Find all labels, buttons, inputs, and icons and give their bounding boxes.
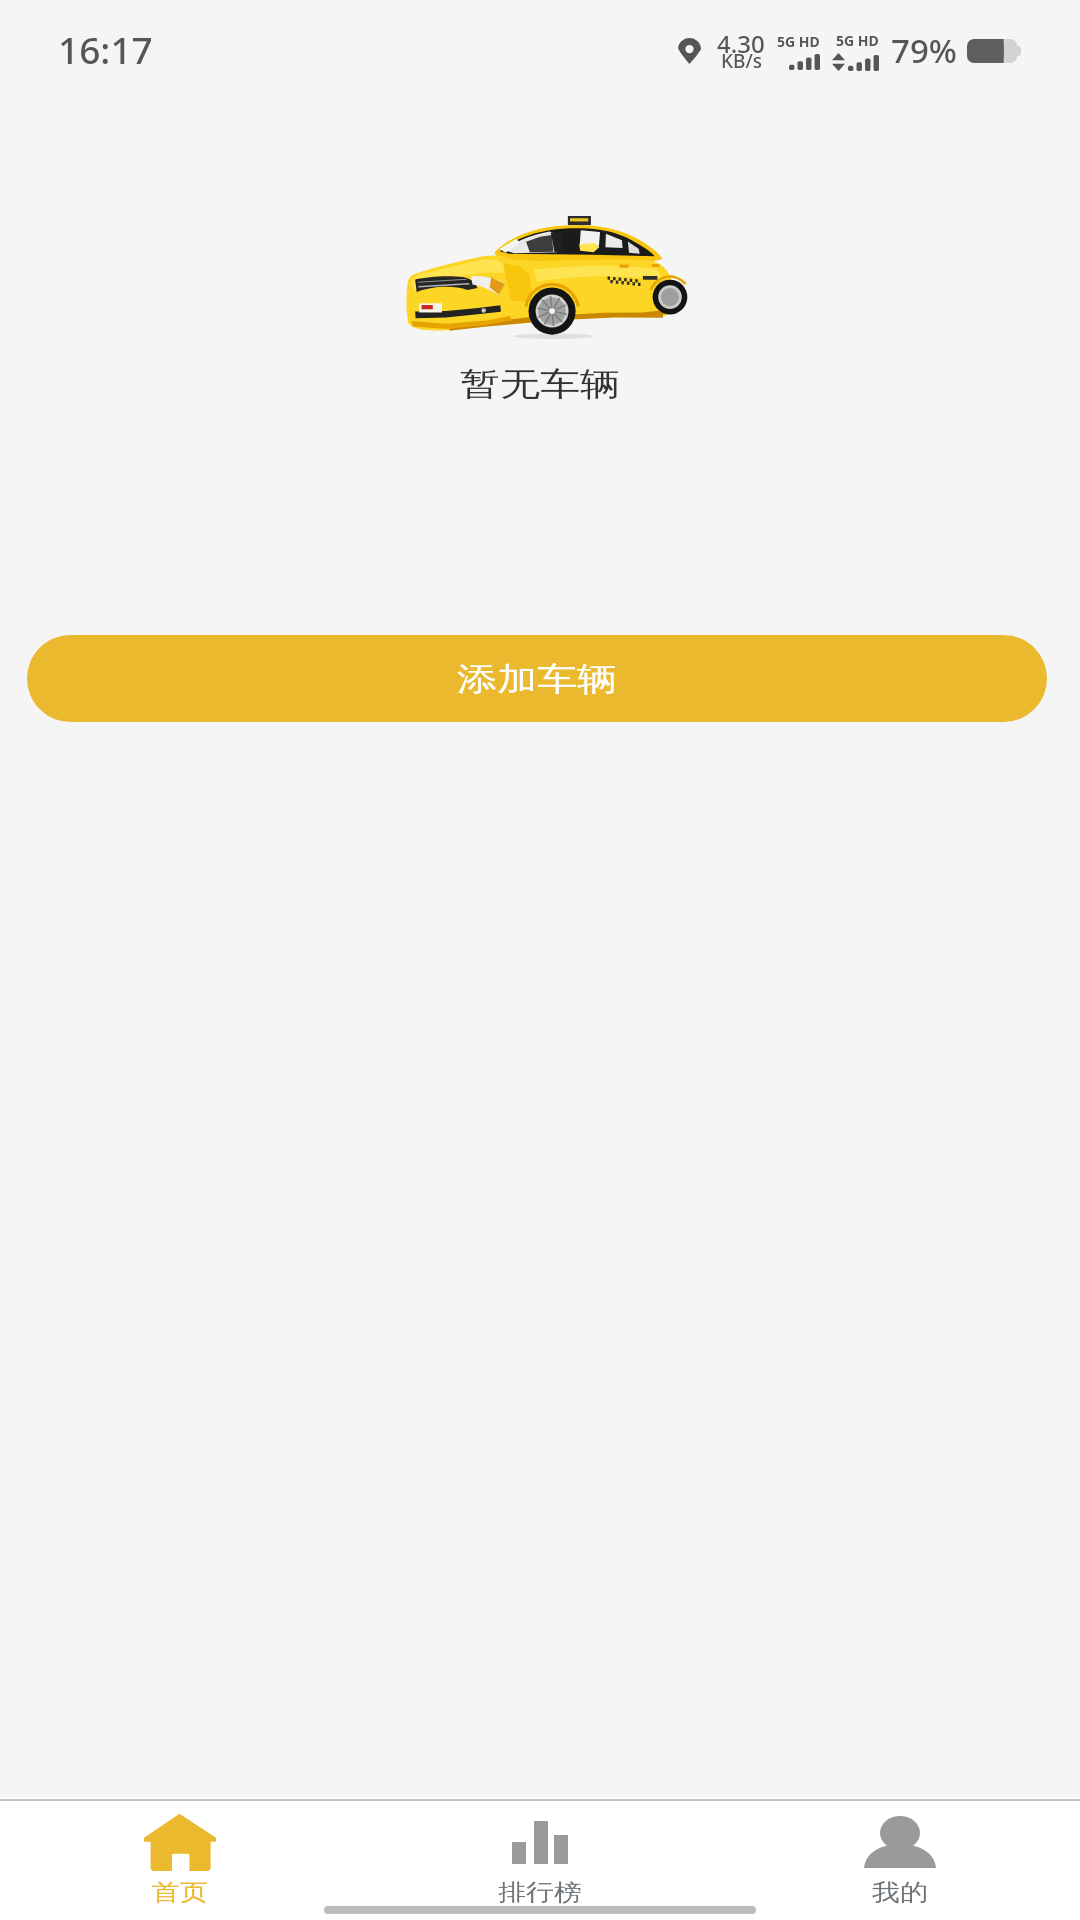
button[interactable]: 首页 [0,1799,360,1910]
staticText: 暂无车辆 [460,364,620,404]
staticText: 5G HD [836,31,879,50]
staticText: KB/s [721,48,762,74]
staticText: 4.30 [717,27,765,60]
staticText: 首页 [152,1878,208,1907]
staticText: 我的 [872,1878,928,1907]
button[interactable]: 排行榜 [360,1799,720,1910]
staticText: 79% [891,28,957,73]
button[interactable]: 我的 [720,1799,1080,1910]
staticText: 5G HD [777,32,820,51]
staticText: 添加车辆 [457,659,617,699]
button[interactable]: 添加车辆 [27,635,1047,722]
staticText: 16:17 [58,24,153,74]
staticText: 排行榜 [498,1878,582,1907]
